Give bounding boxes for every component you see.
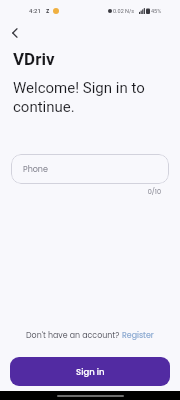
staticText: 45% (151, 8, 162, 14)
staticText: Sign in (76, 366, 105, 378)
staticText: Register (122, 330, 154, 341)
staticText: 4:21 (29, 7, 41, 14)
staticText: 0.02 N/s (113, 8, 135, 14)
staticText: 0/10 (11, 187, 161, 196)
staticText: Phone (23, 164, 48, 175)
button[interactable]: Sign in (10, 357, 170, 386)
staticText: z (46, 7, 50, 15)
button[interactable]: Register (122, 330, 154, 341)
button[interactable]: Phone (11, 154, 169, 184)
staticText: Don't have an account? (26, 330, 122, 341)
button[interactable]: Back (3, 21, 27, 45)
staticText: Welcome! Sign in to continue. (13, 79, 156, 116)
staticText: VDriv (13, 49, 55, 69)
